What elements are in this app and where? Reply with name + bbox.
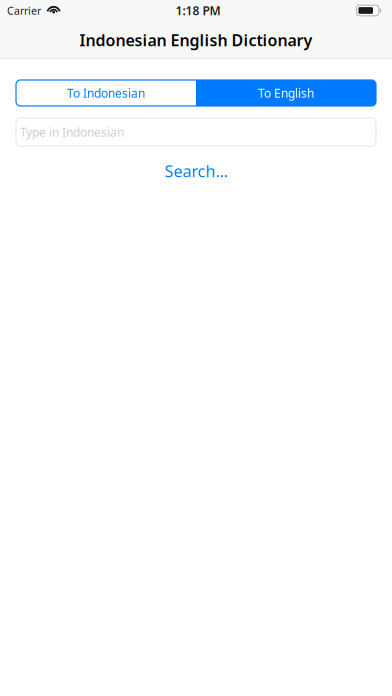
staticText: Search... — [164, 160, 227, 182]
button[interactable]: Type in Indonesian — [16, 118, 376, 146]
staticText: 1:18 PM — [175, 2, 220, 18]
button[interactable]: Search... — [150, 159, 241, 183]
staticText: Carrier — [7, 3, 41, 18]
staticText: Type in Indonesian — [20, 124, 124, 140]
button[interactable]: To Indonesian — [16, 80, 196, 106]
staticText: To English — [258, 85, 314, 101]
staticText: To Indonesian — [67, 85, 145, 101]
button[interactable]: To English — [196, 80, 376, 106]
staticText: Indonesian English Dictionary — [79, 29, 312, 51]
